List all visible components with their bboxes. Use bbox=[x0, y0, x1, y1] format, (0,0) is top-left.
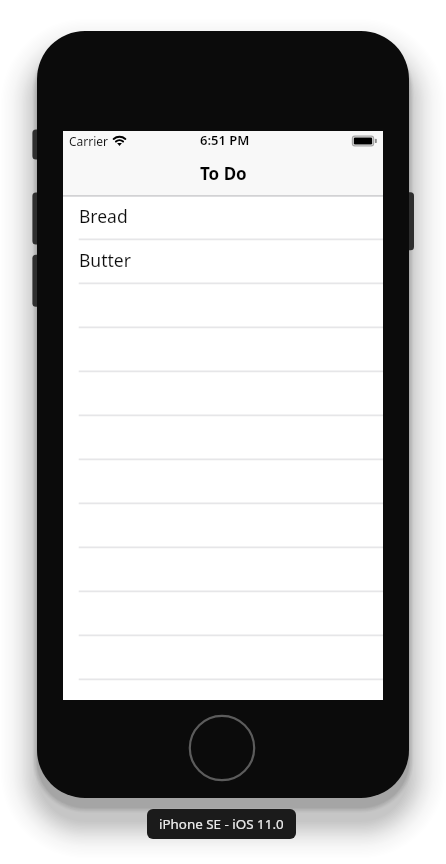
staticText: iPhone SE - iOS 11.0 bbox=[159, 815, 284, 833]
button[interactable]: Butter bbox=[63, 239, 383, 283]
button[interactable] bbox=[63, 503, 383, 547]
staticText: To Do bbox=[200, 162, 247, 185]
button[interactable] bbox=[63, 459, 383, 503]
button[interactable] bbox=[63, 283, 383, 327]
button[interactable] bbox=[63, 591, 383, 635]
button[interactable] bbox=[63, 679, 383, 700]
button[interactable]: iPhone SE - iOS 11.0 bbox=[147, 809, 296, 839]
staticText: Carrier bbox=[69, 133, 109, 149]
staticText: Butter bbox=[79, 248, 131, 272]
other: Battery full bbox=[351, 134, 378, 148]
button[interactable] bbox=[63, 635, 383, 679]
button[interactable] bbox=[63, 415, 383, 459]
staticText: 6:51 PM bbox=[200, 131, 250, 149]
staticText: Bread bbox=[79, 204, 128, 228]
button[interactable]: Bread bbox=[63, 195, 383, 239]
button[interactable] bbox=[63, 371, 383, 415]
other: Wi-Fi bbox=[112, 134, 127, 148]
button[interactable] bbox=[63, 547, 383, 591]
button[interactable] bbox=[63, 327, 383, 371]
